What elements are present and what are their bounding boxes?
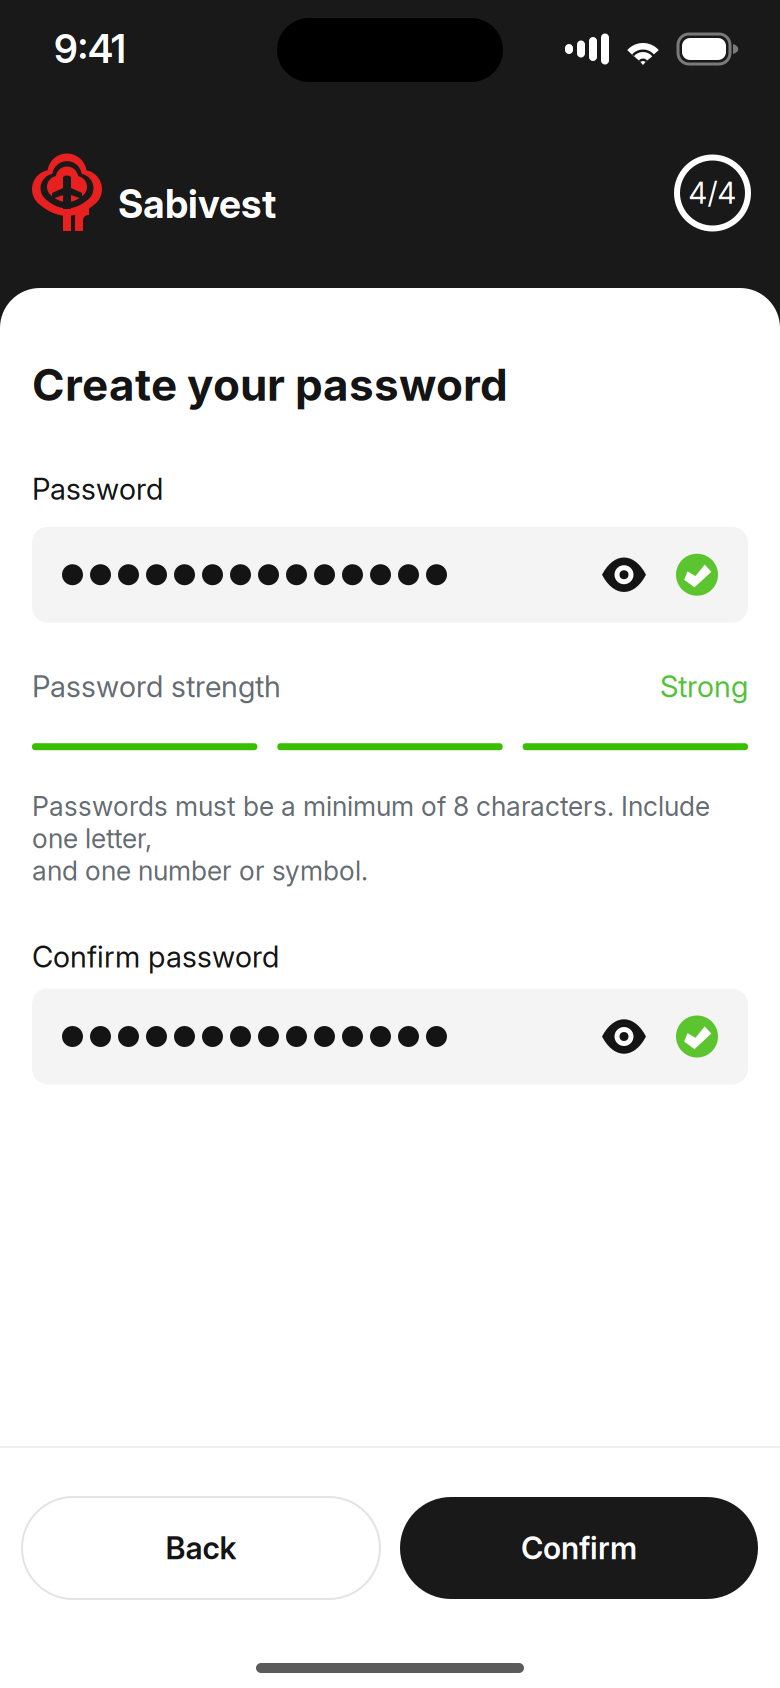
staticText: Strong <box>660 669 748 704</box>
button[interactable]: Back <box>22 1497 380 1599</box>
staticText: Back <box>165 1529 236 1566</box>
button[interactable]: confirm password valid <box>676 1015 718 1057</box>
staticText: Password <box>32 471 163 507</box>
staticText: 9:41 <box>54 26 126 72</box>
staticText: Passwords must be a minimum of 8 charact… <box>32 790 710 887</box>
staticText: Sabivest <box>118 181 276 227</box>
button[interactable]: Confirm <box>400 1497 758 1599</box>
button[interactable]: Show password <box>601 555 647 595</box>
staticText: 4/4 <box>688 175 736 211</box>
staticText: Create your password <box>32 358 508 411</box>
button[interactable]: Show confirm password <box>601 1016 647 1056</box>
staticText: Confirm <box>521 1529 637 1566</box>
staticText: Confirm password <box>32 939 279 974</box>
button[interactable]: 4/4 <box>677 157 748 228</box>
staticText: Password strength <box>32 669 281 704</box>
button[interactable]: password valid <box>676 554 718 596</box>
